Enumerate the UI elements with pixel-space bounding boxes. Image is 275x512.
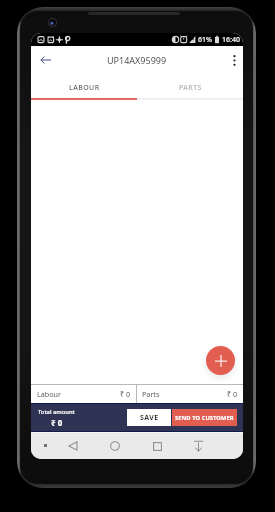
staticText: SAVE	[140, 413, 159, 423]
button[interactable]: More options	[220, 46, 243, 74]
staticText: SEND TO CUSTOMER	[175, 414, 234, 422]
staticText: ₹ 0	[120, 389, 131, 399]
staticText: Parts	[142, 389, 160, 399]
button[interactable]: LABOUR	[31, 76, 137, 100]
staticText: ₹ 0	[227, 389, 238, 399]
button[interactable]: SEND TO CUSTOMER	[172, 409, 237, 426]
button[interactable]: Parts	[137, 385, 243, 403]
button[interactable]: PARTS	[137, 76, 243, 100]
button[interactable]: Home	[104, 435, 126, 457]
button[interactable]: Labour	[31, 385, 136, 403]
button[interactable]: Recent apps	[146, 435, 168, 457]
staticText: ₹ 0	[51, 417, 63, 428]
button[interactable]: Navigate back	[31, 46, 59, 74]
staticText: 16:40	[222, 35, 240, 45]
staticText: UP14AX95999	[107, 54, 167, 66]
button[interactable]: Add new item	[206, 346, 235, 375]
staticText: PARTS	[179, 83, 202, 93]
staticText: LABOUR	[69, 83, 100, 93]
button[interactable]: Download	[187, 435, 209, 457]
staticText: Labour	[37, 389, 61, 399]
button[interactable]: SAVE	[127, 409, 171, 426]
staticText: 61%	[198, 35, 212, 45]
staticText: Total amount	[38, 408, 75, 416]
button[interactable]: Back	[62, 435, 84, 457]
